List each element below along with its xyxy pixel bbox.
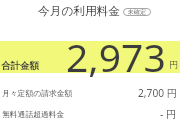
staticText: 未確定 xyxy=(128,8,146,16)
staticText: 2,700 円 xyxy=(138,86,177,100)
staticText: 無料通話超過料金 xyxy=(2,109,65,119)
staticText: - 円 xyxy=(160,107,177,120)
staticText: 月々定額の請求金額 xyxy=(2,88,73,98)
button[interactable]: 月々定額の請求金額 xyxy=(0,86,180,100)
staticText: 合計金額 xyxy=(1,60,39,72)
staticText: 2,973 xyxy=(66,30,166,83)
button[interactable]: 無料通話超過料金 xyxy=(0,107,180,120)
staticText: 円 xyxy=(169,59,178,70)
button[interactable]: 未確定 xyxy=(123,8,151,16)
staticText: 今月の利用料金 xyxy=(38,4,121,19)
